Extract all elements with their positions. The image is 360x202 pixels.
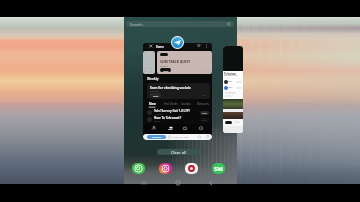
button[interactable]: Bonuses [197, 102, 210, 106]
staticText: Earn [156, 44, 164, 49]
staticText: Start [202, 112, 207, 115]
staticText: Limited [160, 65, 169, 68]
staticText: Start [202, 119, 207, 122]
staticText: Weekly [147, 77, 159, 81]
staticText: Public channel [224, 74, 238, 77]
staticText: telegram [152, 136, 162, 139]
button[interactable]: Profile [195, 124, 207, 134]
staticText: Home [151, 128, 157, 131]
staticText: Telegram [224, 72, 237, 76]
staticText: +1 coin [154, 113, 162, 116]
button[interactable]: Hot Deals [164, 102, 178, 106]
button[interactable]: Tele! Survey Get 1.0 LTP! [147, 109, 209, 116]
button[interactable]: SLIM TRACK QUEST [157, 51, 212, 74]
button[interactable]: Socials [181, 102, 191, 106]
button[interactable]: Instagram [159, 163, 172, 174]
button[interactable]: Clear all [157, 149, 201, 155]
button[interactable]: WhatsApp [132, 163, 145, 174]
button[interactable]: Earn [164, 124, 176, 134]
staticText: Item [228, 86, 233, 89]
staticText: +2 LTP [154, 120, 161, 123]
staticText: Search or type [173, 136, 189, 139]
button[interactable]: SM app [212, 163, 225, 174]
button[interactable]: Wallet [179, 124, 191, 134]
button[interactable]: How To Telecoast? [147, 116, 209, 123]
staticText: +50 coin [150, 90, 160, 93]
staticText: Tele! Survey Get 1.0 LTP! [154, 109, 190, 113]
button[interactable]: Browser [185, 163, 198, 174]
button[interactable]: Earn [143, 43, 212, 140]
staticText: SLIM TRACK QUEST [160, 60, 190, 64]
staticText: SM [214, 165, 223, 173]
staticText: 0/5 [202, 94, 206, 97]
button[interactable]: telegram [143, 134, 212, 140]
staticText: Profile [198, 128, 204, 131]
staticText: Search [130, 22, 143, 27]
staticText: Clear all [171, 150, 187, 155]
staticText: Wallet [182, 128, 188, 131]
button[interactable]: Earn for checking socials [147, 83, 210, 99]
staticText: Start [163, 69, 169, 72]
other: Telegram [171, 36, 184, 49]
staticText: Item [228, 80, 233, 83]
staticText: Earn [168, 128, 173, 131]
button[interactable]: Telegram [223, 46, 243, 133]
button[interactable]: Search [126, 21, 234, 27]
staticText: Start [153, 94, 159, 97]
staticText: How To Telecoast? [154, 116, 182, 120]
button[interactable]: Home [148, 124, 160, 134]
staticText: Earn for checking socials [150, 85, 191, 89]
button[interactable]: New [149, 102, 156, 106]
